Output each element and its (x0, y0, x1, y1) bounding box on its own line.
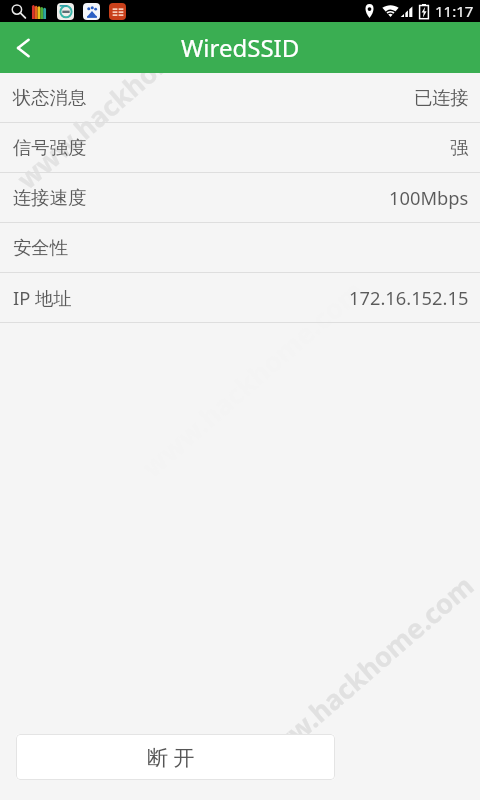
staticText: www.hackhome.com (9, 0, 246, 197)
staticText: 强 (450, 136, 469, 159)
staticText: 断 开 (147, 743, 195, 772)
staticText: 安全性 (13, 236, 68, 259)
staticText: 状态消息 (13, 86, 87, 109)
staticText: 172.16.152.15 (349, 285, 469, 310)
staticText: 11:17 (435, 1, 474, 21)
staticText: 连接速度 (13, 186, 87, 209)
staticText: 100Mbps (389, 185, 469, 210)
button[interactable]: 信号强度 (0, 123, 480, 173)
button[interactable]: 状态消息 (0, 73, 480, 123)
button[interactable]: Back (0, 22, 50, 73)
staticText: www.hackhome.com (244, 567, 480, 780)
staticText: IP 地址 (13, 285, 72, 310)
button[interactable]: 断 开 (16, 734, 335, 780)
staticText: WiredSSID (181, 31, 300, 64)
staticText: 信号强度 (13, 136, 87, 159)
button[interactable]: 安全性 (0, 223, 480, 273)
button[interactable]: 连接速度 (0, 173, 480, 223)
staticText: www.hackhome.com (134, 272, 371, 485)
button[interactable]: IP 地址 (0, 273, 480, 323)
staticText: 已连接 (414, 86, 469, 109)
